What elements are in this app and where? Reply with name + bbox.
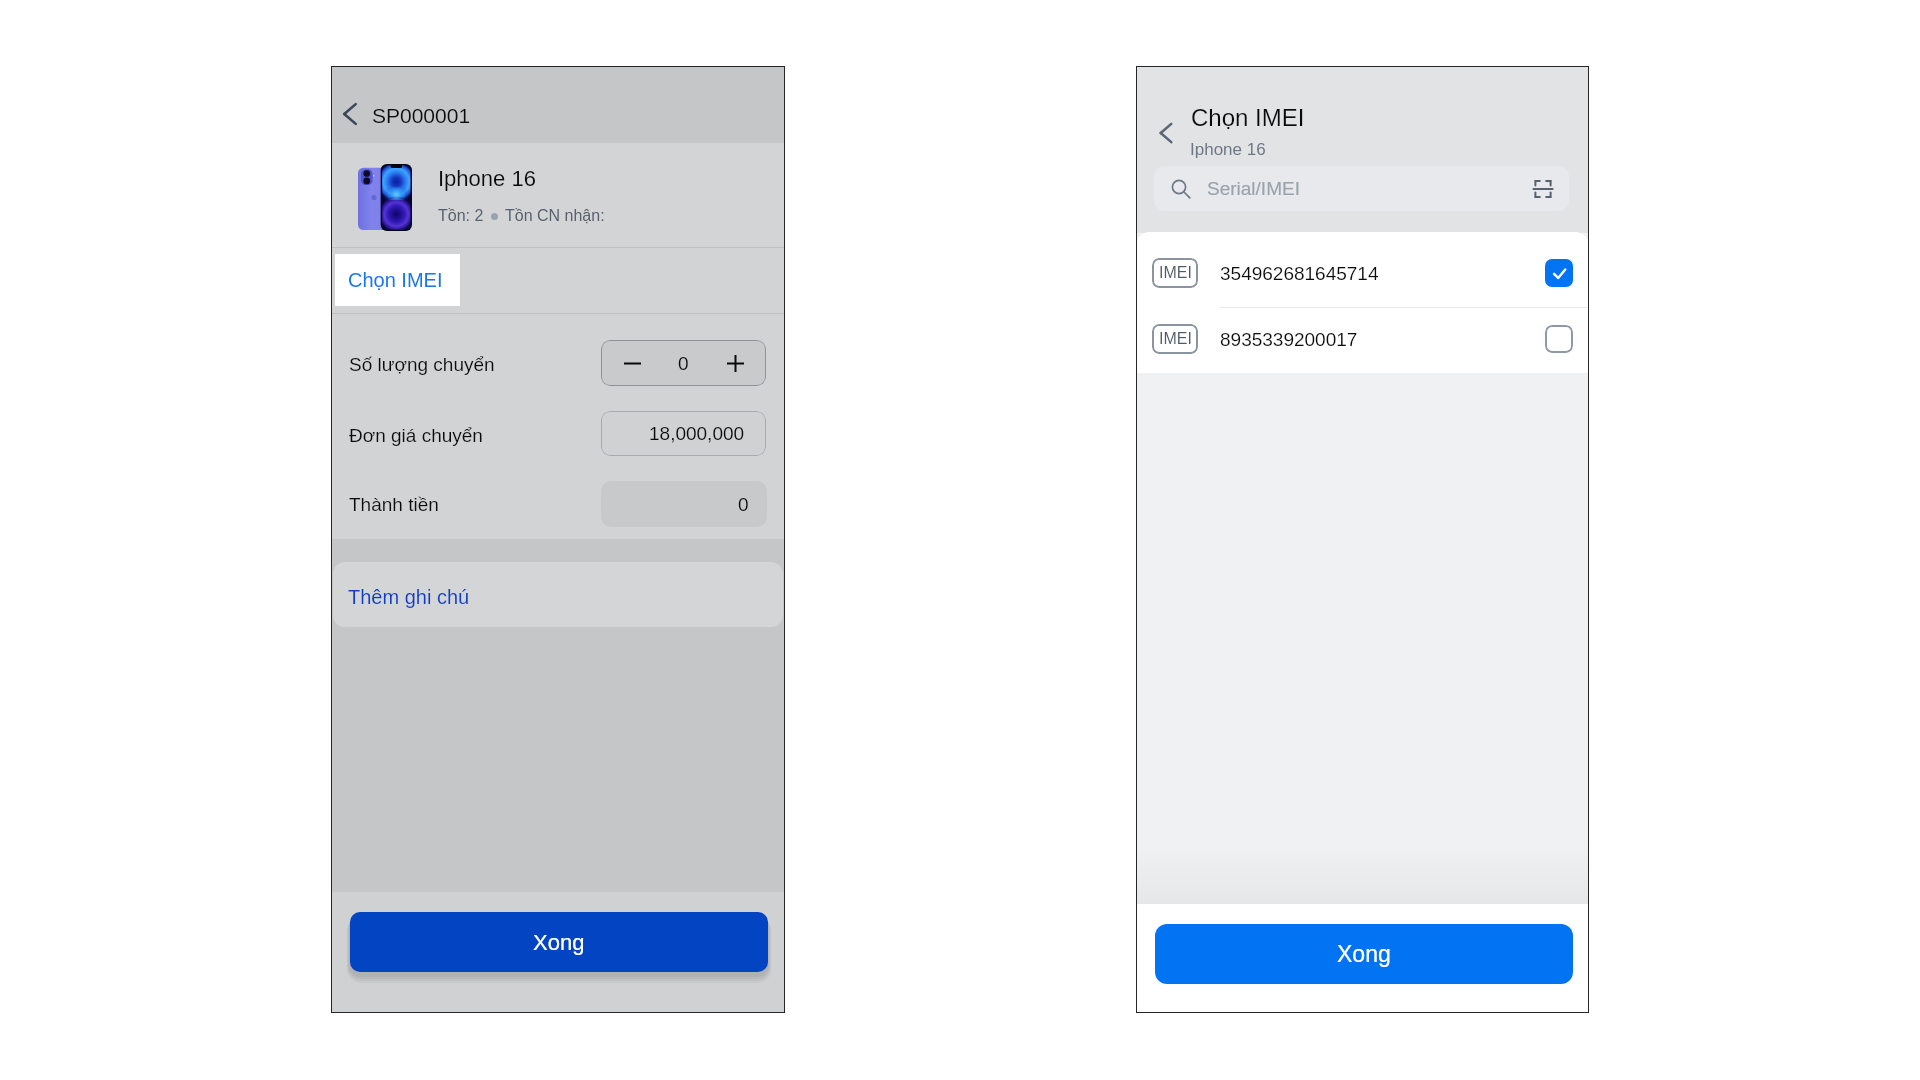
button[interactable]: Xong (1155, 924, 1573, 984)
staticText: Thêm ghi chú (348, 586, 470, 608)
staticText: Iphone 16 (1190, 140, 1266, 159)
staticText: Xong (533, 930, 585, 955)
staticText: Đơn giá chuyển (349, 425, 483, 446)
button[interactable]: IMEI (1136, 240, 1589, 306)
staticText: SP000001 (372, 104, 471, 127)
button[interactable]: Back (331, 95, 369, 133)
button[interactable]: Chọn IMEI (335, 254, 460, 306)
staticText: Iphone 16 (438, 166, 536, 191)
staticText: Tồn: 2 (438, 207, 484, 225)
staticText: Số lượng chuyển (349, 354, 495, 375)
button[interactable]: Selected (1545, 259, 1573, 287)
staticText: Serial/IMEI (1207, 178, 1300, 199)
staticText: 0 (738, 494, 749, 515)
button[interactable]: Not selected (1545, 325, 1573, 353)
staticText: 18,000,000 (649, 423, 745, 444)
staticText: 8935339200017 (1220, 329, 1358, 350)
staticText: Tồn CN nhận: (505, 207, 605, 225)
staticText: Chọn IMEI (348, 269, 443, 291)
button[interactable]: Increase quantity (704, 340, 766, 386)
staticText: 0 (678, 353, 689, 374)
staticText: Chọn IMEI (1191, 104, 1305, 131)
staticText: IMEI (1159, 330, 1192, 348)
button[interactable]: Scan barcode (1523, 169, 1563, 209)
button[interactable]: IMEI (1136, 306, 1589, 372)
button[interactable]: Xong (350, 912, 768, 972)
staticText: Thành tiền (349, 494, 439, 515)
button[interactable]: Thêm ghi chú (333, 562, 783, 627)
button[interactable]: 18,000,000 (601, 411, 766, 456)
button[interactable]: Serial/IMEI (1154, 166, 1569, 211)
staticText: 354962681645714 (1220, 263, 1379, 284)
staticText: IMEI (1159, 264, 1192, 282)
button[interactable]: Decrease quantity (601, 340, 663, 386)
button[interactable]: Back (1148, 115, 1184, 151)
staticText: Xong (1337, 941, 1391, 967)
